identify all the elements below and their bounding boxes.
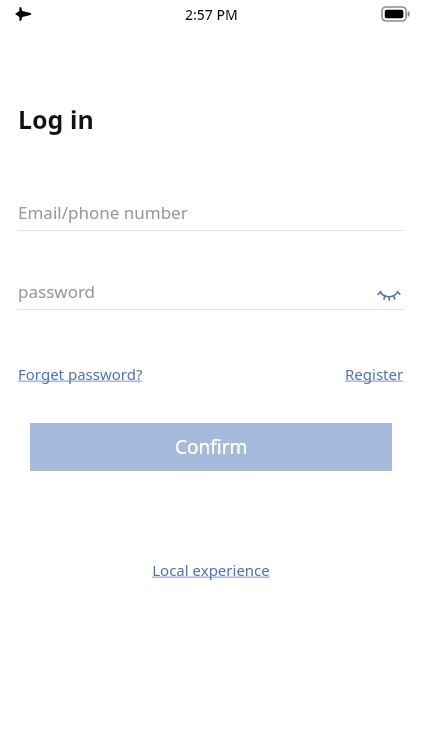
button[interactable]: Register <box>345 364 404 384</box>
staticText: Forget password? <box>18 364 143 384</box>
staticText: Log in <box>18 102 94 136</box>
staticText: Confirm <box>175 434 248 460</box>
button[interactable]: Show password <box>374 276 404 306</box>
staticText: Register <box>345 364 404 384</box>
button[interactable]: Forget password? <box>18 364 143 384</box>
button[interactable]: Email/phone number <box>18 194 404 230</box>
staticText: Email/phone number <box>18 201 188 224</box>
staticText: 2:57 PM <box>185 5 238 24</box>
staticText: password <box>18 280 96 303</box>
other: Battery full <box>382 7 410 21</box>
button[interactable]: Local experience <box>152 560 270 580</box>
staticText: Local experience <box>152 560 270 580</box>
button[interactable]: password <box>18 273 404 309</box>
other: Airplane mode <box>14 5 32 23</box>
button[interactable]: Confirm <box>30 423 392 471</box>
